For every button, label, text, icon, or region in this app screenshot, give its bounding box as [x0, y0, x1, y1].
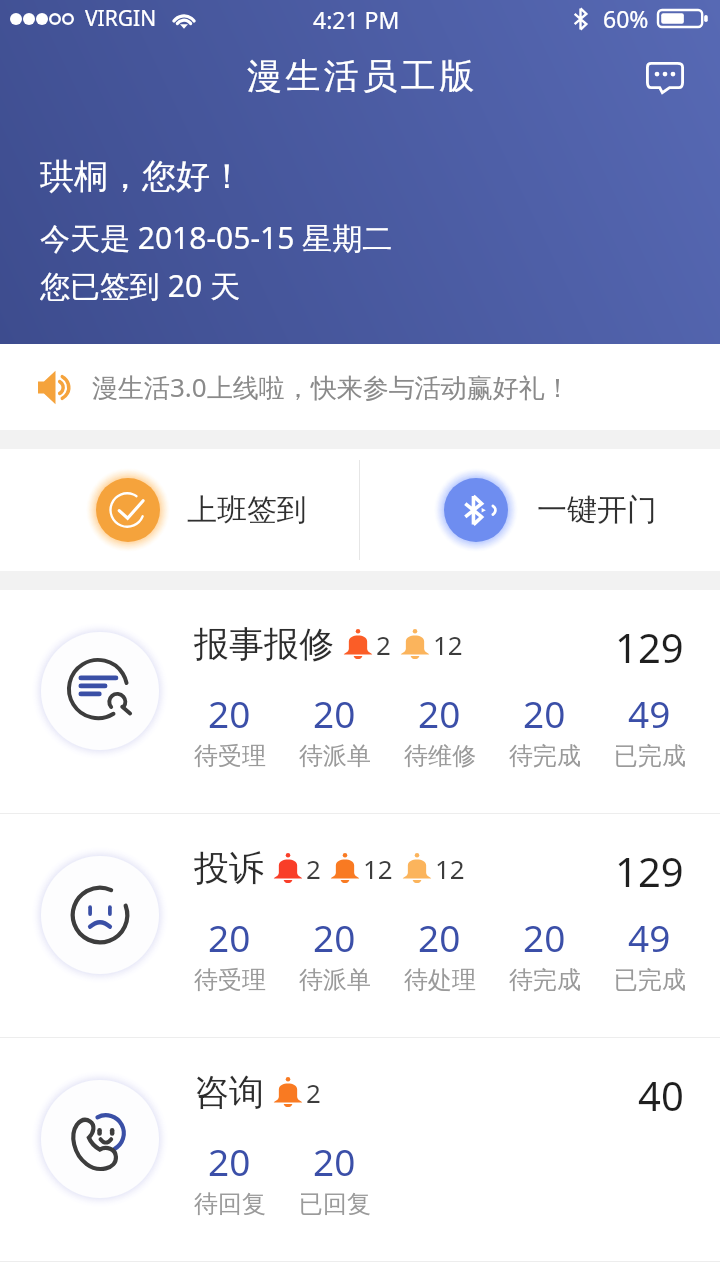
staticText: 待完成: [509, 741, 581, 771]
staticText: 已回复: [299, 1189, 371, 1219]
staticText: 上班签到: [187, 491, 307, 529]
staticText: VIRGIN: [85, 4, 157, 33]
staticText: 40: [638, 1068, 684, 1122]
staticText: 待受理: [194, 741, 266, 771]
staticText: 20: [208, 912, 251, 962]
staticText: 已完成: [614, 741, 686, 771]
staticText: 待受理: [194, 965, 266, 995]
staticText: 待完成: [509, 965, 581, 995]
staticText: 今天是 2018-05-15 星期二: [40, 217, 393, 258]
button[interactable]: 上班签到: [86, 468, 307, 552]
staticText: 20: [523, 912, 566, 962]
staticText: 49: [628, 912, 671, 962]
staticText: 20: [208, 1136, 251, 1186]
staticText: 2: [306, 851, 321, 886]
staticText: 已完成: [614, 965, 686, 995]
staticText: 您已签到 20 天: [40, 265, 240, 306]
button[interactable]: Messages: [635, 48, 695, 108]
staticText: 待派单: [299, 741, 371, 771]
staticText: 漫生活员工版: [245, 54, 476, 98]
staticText: 漫生活3.0上线啦，快来参与活动赢好礼！: [92, 369, 571, 405]
staticText: 12: [433, 627, 463, 662]
staticText: 珙桐，您好！: [40, 155, 244, 198]
staticText: 20: [313, 688, 356, 738]
staticText: 20: [313, 912, 356, 962]
staticText: 待处理: [404, 965, 476, 995]
staticText: 129: [615, 620, 684, 674]
staticText: 20: [418, 912, 461, 962]
staticText: 2: [306, 1075, 321, 1110]
staticText: 20: [313, 1136, 356, 1186]
staticText: 4:21 PM: [313, 4, 400, 35]
staticText: 20: [523, 688, 566, 738]
staticText: 投诉: [194, 846, 264, 890]
staticText: 49: [628, 688, 671, 738]
button[interactable]: 一键开门: [434, 468, 657, 552]
staticText: 待回复: [194, 1189, 266, 1219]
staticText: 20: [418, 688, 461, 738]
staticText: 2: [376, 627, 391, 662]
staticText: 12: [363, 851, 393, 886]
button[interactable]: 报事报修: [0, 590, 720, 813]
staticText: 12: [435, 851, 465, 886]
staticText: 待派单: [299, 965, 371, 995]
staticText: 60%: [603, 3, 649, 34]
staticText: 一键开门: [537, 491, 657, 529]
staticText: 报事报修: [194, 622, 334, 666]
button[interactable]: 投诉: [0, 814, 720, 1037]
staticText: 129: [615, 844, 684, 898]
staticText: 待维修: [404, 741, 476, 771]
staticText: 咨询: [194, 1070, 264, 1114]
button[interactable]: 漫生活3.0上线啦，快来参与活动赢好礼！: [0, 344, 720, 430]
button[interactable]: 咨询: [0, 1038, 720, 1261]
staticText: 20: [208, 688, 251, 738]
